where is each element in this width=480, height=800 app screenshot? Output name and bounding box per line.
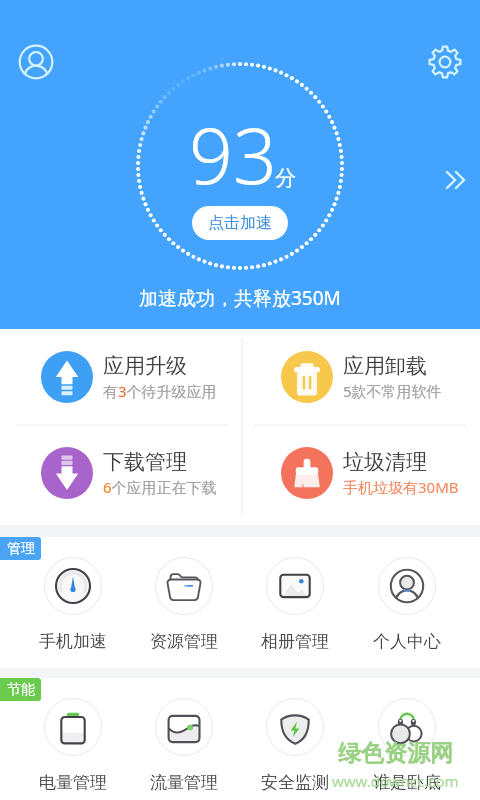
staticText: 点击加速	[208, 213, 272, 233]
button[interactable]: 应用升级	[0, 329, 240, 425]
button[interactable]: More	[434, 158, 478, 202]
button[interactable]: 相册管理	[239, 557, 351, 652]
button[interactable]: Profile	[12, 38, 60, 86]
staticText: 应用升级	[103, 353, 187, 379]
staticText: 6个应用正在下载	[103, 477, 217, 497]
staticText: 谁是卧底	[373, 772, 441, 793]
button[interactable]: 谁是卧底	[351, 698, 463, 793]
staticText: 手机垃圾有30MB	[343, 477, 459, 497]
staticText: 垃圾清理	[343, 449, 427, 475]
staticText: 93	[189, 102, 277, 207]
staticText: www.downcc.com	[332, 771, 459, 791]
staticText: 电量管理	[39, 772, 107, 793]
button[interactable]: 垃圾清理	[240, 425, 480, 521]
button[interactable]: 应用卸载	[240, 329, 480, 425]
staticText: 相册管理	[261, 631, 329, 652]
staticText: 应用卸载	[343, 353, 427, 379]
button[interactable]: 点击加速	[192, 206, 288, 240]
staticText: 资源管理	[150, 631, 218, 652]
staticText: 有3个待升级应用	[103, 381, 217, 401]
button[interactable]: 下载管理	[0, 425, 240, 521]
button[interactable]: 个人中心	[351, 557, 463, 652]
staticText: 管理	[7, 540, 35, 558]
staticText: 绿色资源网	[338, 739, 453, 768]
staticText: 手机加速	[39, 631, 107, 652]
staticText: 个人中心	[373, 631, 441, 652]
staticText: 流量管理	[150, 772, 218, 793]
button[interactable]: 电量管理	[17, 698, 128, 793]
button[interactable]: 安全监测	[239, 698, 351, 793]
button[interactable]: 资源管理	[128, 557, 239, 652]
staticText: 下载管理	[103, 449, 187, 475]
staticText: 加速成功，共释放350M	[139, 285, 341, 311]
button[interactable]: 流量管理	[128, 698, 239, 793]
button[interactable]: Settings	[421, 38, 469, 86]
staticText: 分	[275, 165, 296, 191]
staticText: 5款不常用软件	[343, 381, 442, 401]
button[interactable]: 手机加速	[17, 557, 128, 652]
staticText: 节能	[7, 681, 35, 699]
staticText: 安全监测	[261, 772, 329, 793]
